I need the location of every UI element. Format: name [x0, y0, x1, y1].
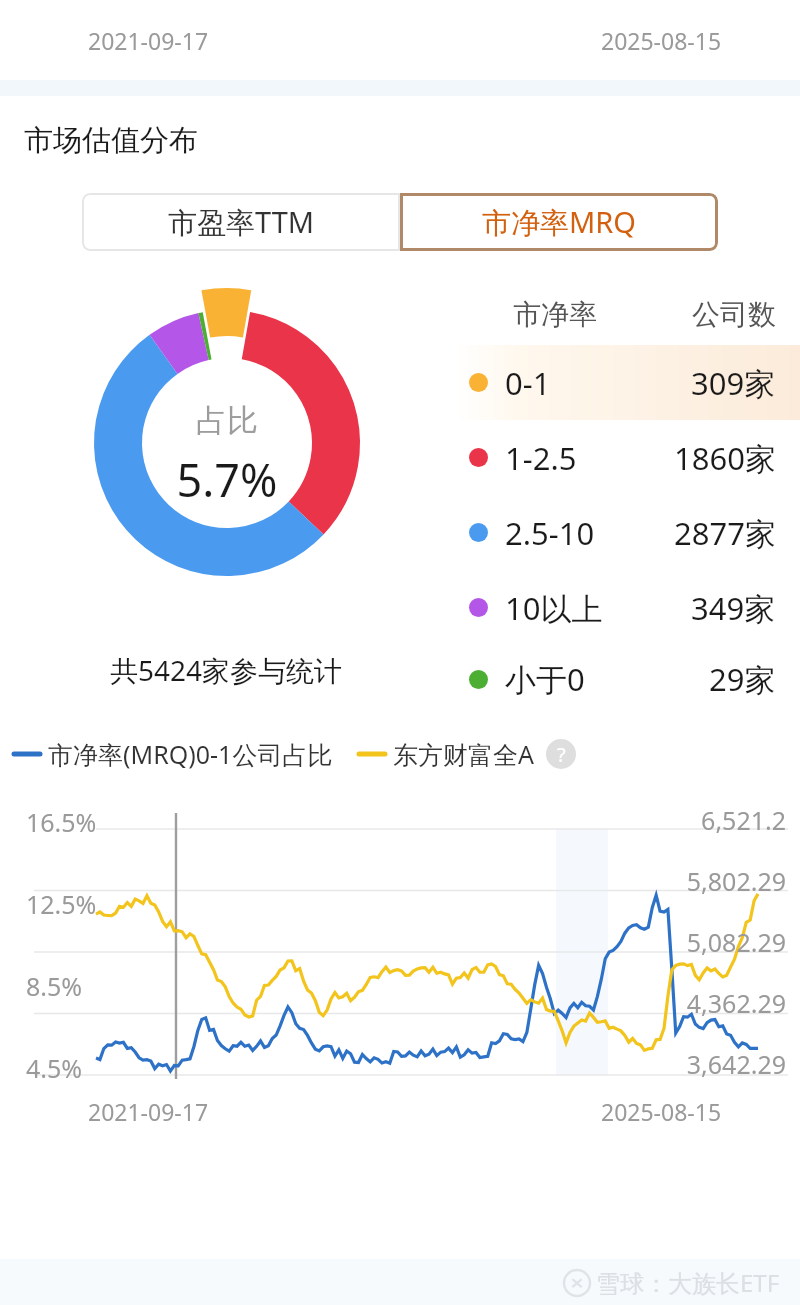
staticText: 1860家 — [674, 437, 776, 479]
staticText: 8.5% — [26, 969, 83, 1003]
staticText: 0-1 — [505, 362, 551, 404]
staticText: 29家 — [709, 658, 776, 700]
staticText: 5.7% — [160, 449, 294, 510]
staticText: 市净率 — [513, 297, 597, 332]
staticText: 共5424家参与统计 — [110, 651, 343, 689]
staticText: 1-2.5 — [505, 437, 577, 479]
staticText: 市净率MRQ — [482, 202, 636, 242]
staticText: 2021-09-17 — [88, 25, 209, 56]
staticText: 2025-08-15 — [601, 25, 722, 56]
staticText: 16.5% — [26, 805, 97, 839]
button[interactable]: 小于0 — [455, 645, 800, 713]
staticText: 东方财富全A — [393, 737, 534, 771]
staticText: 12.5% — [26, 887, 97, 921]
button[interactable]: 0-1 — [455, 345, 800, 420]
staticText: 雪球：大族长ETF — [596, 1266, 780, 1299]
staticText: 309家 — [691, 362, 776, 404]
staticText: 6,521.2 — [0, 803, 786, 837]
button[interactable]: 1-2.5 — [455, 420, 800, 495]
staticText: 2.5-10 — [505, 512, 595, 554]
staticText: 2877家 — [674, 512, 776, 554]
staticText: 3,642.29 — [0, 1047, 786, 1081]
staticText: 5,082.29 — [0, 925, 786, 959]
staticText: 10以上 — [505, 587, 603, 629]
staticText: ? — [557, 741, 566, 768]
button[interactable]: 10以上 — [455, 570, 800, 645]
button[interactable]: 市盈率TTM — [82, 193, 400, 251]
staticText: 市场估值分布 — [24, 122, 198, 159]
staticText: 349家 — [691, 587, 776, 629]
button[interactable]: 2.5-10 — [455, 495, 800, 570]
staticText: 占比 — [180, 401, 274, 440]
staticText: 小于0 — [505, 658, 585, 700]
staticText: 5,802.29 — [0, 864, 786, 898]
staticText: 市净率(MRQ)0-1公司占比 — [48, 737, 333, 771]
staticText: 4,362.29 — [0, 986, 786, 1020]
staticText: 公司数 — [692, 297, 776, 332]
staticText: 市盈率TTM — [168, 202, 315, 242]
button[interactable]: 市净率MRQ — [400, 193, 718, 251]
staticText: 2021-09-17 — [88, 1096, 209, 1127]
button[interactable]: Help — [546, 739, 576, 769]
staticText: 2025-08-15 — [601, 1096, 722, 1127]
staticText: 4.5% — [26, 1051, 83, 1085]
